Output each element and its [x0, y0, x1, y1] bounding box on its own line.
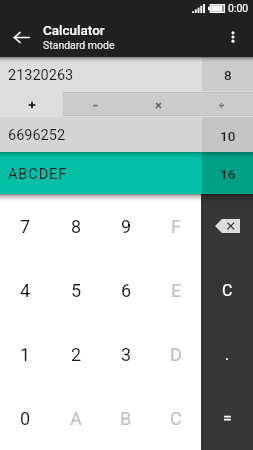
staticText: 8 [224, 67, 232, 83]
button[interactable]: 21320263 [0, 57, 253, 91]
staticText: Standard mode [43, 39, 115, 51]
button[interactable]: 6 [101, 258, 151, 322]
staticText: E [171, 280, 182, 301]
staticText: 21320263 [8, 67, 74, 84]
staticText: A [70, 408, 82, 429]
button[interactable]: 8 [51, 194, 101, 258]
staticText: 9 [121, 216, 132, 237]
button[interactable]: 0 [0, 386, 51, 450]
button[interactable]: . [201, 322, 253, 386]
button[interactable]: ABCDEF [0, 152, 253, 194]
button[interactable]: Multiply [127, 91, 190, 117]
button[interactable]: 4 [0, 258, 51, 322]
button[interactable]: Back [4, 20, 38, 54]
staticText: 0:00 [228, 2, 249, 14]
staticText: D [170, 344, 182, 365]
button[interactable]: 5 [51, 258, 101, 322]
button[interactable] [0, 91, 63, 117]
staticText: F [171, 216, 181, 237]
staticText: B [120, 408, 132, 429]
staticText: 6 [121, 280, 132, 301]
button[interactable]: 7 [0, 194, 51, 258]
staticText: 5 [71, 280, 82, 301]
button[interactable]: = [201, 386, 253, 450]
button[interactable]: 2 [51, 322, 101, 386]
staticText: Calculator [43, 22, 105, 38]
button[interactable]: 9 [101, 194, 151, 258]
button[interactable]: Backspace [201, 194, 253, 258]
button[interactable]: F [151, 194, 201, 258]
staticText: 6696252 [8, 127, 66, 144]
button[interactable]: C [201, 258, 253, 322]
staticText: 0 [20, 408, 31, 429]
button[interactable]: C [151, 386, 201, 450]
staticText: ABCDEF [8, 166, 68, 183]
staticText: 2 [71, 344, 82, 365]
button[interactable]: D [151, 322, 201, 386]
staticText: 7 [20, 216, 31, 237]
staticText: 16 [220, 166, 236, 182]
staticText: 10 [220, 128, 236, 144]
staticText: C [170, 408, 182, 429]
staticText: C [222, 281, 233, 300]
staticText: . [225, 345, 230, 364]
button[interactable]: 3 [101, 322, 151, 386]
button[interactable]: 1 [0, 322, 51, 386]
button[interactable]: B [101, 386, 151, 450]
button[interactable]: Divide [190, 91, 253, 117]
staticText: 8 [71, 216, 82, 237]
staticText: 4 [20, 280, 31, 301]
button[interactable]: 6696252 [0, 117, 253, 152]
button[interactable]: More options [216, 20, 250, 54]
button[interactable]: A [51, 386, 101, 450]
staticText: = [223, 409, 232, 428]
staticText: 3 [121, 344, 132, 365]
button[interactable]: Minus [63, 91, 127, 117]
button[interactable]: E [151, 258, 201, 322]
staticText: 1 [20, 344, 31, 365]
